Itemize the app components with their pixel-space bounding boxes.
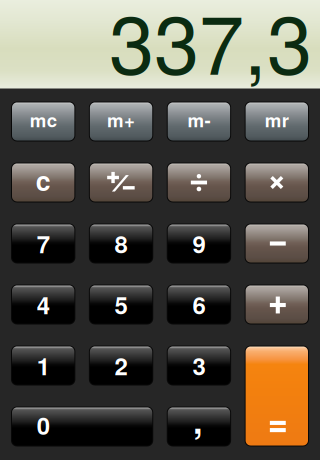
button[interactable]: , [167, 406, 231, 446]
button[interactable]: 3 [167, 345, 231, 385]
button[interactable]: 2 [89, 345, 153, 385]
button[interactable]: 9 [167, 223, 231, 263]
button[interactable]: m+ [89, 101, 153, 141]
staticText: 5 [115, 287, 128, 322]
button[interactable]: Minus [245, 223, 309, 263]
button[interactable]: Plus minus [89, 162, 153, 202]
button[interactable]: Multiply [245, 162, 309, 202]
staticText: 6 [192, 287, 205, 322]
staticText: m+ [107, 106, 135, 133]
button[interactable]: c [11, 162, 75, 202]
staticText: m- [187, 106, 210, 133]
staticText: 3 [192, 348, 205, 383]
button[interactable]: mc [11, 101, 75, 141]
staticText: 9 [192, 226, 205, 261]
button[interactable]: mr [245, 101, 309, 141]
button[interactable]: 8 [89, 223, 153, 263]
staticText: 2 [115, 348, 128, 383]
button[interactable]: 0 [11, 406, 153, 446]
button[interactable]: 5 [89, 284, 153, 324]
button[interactable]: Plus [245, 284, 309, 324]
staticText: , [193, 395, 203, 444]
button[interactable]: 7 [11, 223, 75, 263]
staticText: 0 [37, 408, 50, 442]
staticText: mc [30, 106, 57, 133]
button[interactable]: 1 [11, 345, 75, 385]
staticText: 1 [37, 348, 50, 383]
button[interactable]: Equals [245, 345, 309, 446]
staticText: 8 [115, 226, 128, 261]
button[interactable]: m- [167, 101, 231, 141]
button[interactable]: 4 [11, 284, 75, 324]
button[interactable]: 6 [167, 284, 231, 324]
staticText: mr [265, 106, 289, 133]
staticText: 4 [37, 287, 50, 322]
button[interactable]: Divide [167, 162, 231, 202]
staticText: c [36, 161, 51, 199]
staticText: 7 [37, 226, 50, 261]
staticText: 337,3 [109, 0, 312, 98]
